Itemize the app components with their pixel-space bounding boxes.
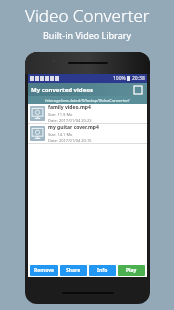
staticText: Size: 14.1 Mo	[48, 132, 73, 137]
button[interactable]: Share	[60, 265, 87, 276]
staticText: 100%	[113, 75, 126, 82]
staticText: Video Converter	[25, 4, 150, 27]
staticText: Info	[97, 267, 108, 274]
staticText: Date: 2017/01/04 20:23	[48, 118, 92, 123]
staticText: family video.mp4	[48, 104, 91, 111]
staticText: Play	[126, 267, 137, 274]
staticText: 20:38	[132, 75, 145, 82]
staticText: Share	[66, 267, 81, 274]
button[interactable]: Info	[89, 265, 116, 276]
staticText: Built-in Video Library	[43, 29, 132, 41]
button[interactable]: Remove	[30, 265, 58, 276]
staticText: /storage/emulated/0/fastop/VideoConverte…	[45, 98, 130, 103]
staticText: my guitar cover.mp4	[48, 124, 99, 131]
staticText: Date: 2017/01/04 20:15	[48, 138, 92, 143]
staticText: My converted videos	[31, 86, 93, 94]
button[interactable]: my guitar cover.mp4	[28, 124, 147, 143]
staticText: Size: 11.9 Mo	[48, 112, 73, 117]
button[interactable]: family video.mp4	[28, 104, 147, 123]
button[interactable]: Select all	[132, 84, 144, 96]
staticText: Remove	[34, 267, 55, 274]
button[interactable]: Play	[118, 265, 145, 276]
